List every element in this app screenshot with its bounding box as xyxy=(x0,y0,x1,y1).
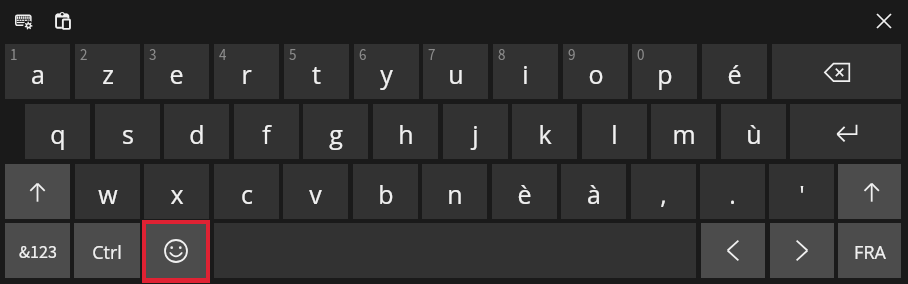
button[interactable]: Shift xyxy=(838,164,901,219)
staticText: f xyxy=(262,117,271,151)
staticText: z xyxy=(102,57,114,91)
button[interactable]: à xyxy=(561,164,626,219)
button[interactable]: Emoji xyxy=(146,224,206,278)
button[interactable]: Keyboard settings xyxy=(8,5,40,38)
staticText: i xyxy=(522,57,529,91)
button[interactable]: i xyxy=(493,44,558,99)
button[interactable]: u xyxy=(423,44,488,99)
staticText: Ctrl xyxy=(92,240,122,265)
staticText: p xyxy=(657,57,673,91)
button[interactable]: è xyxy=(492,164,557,219)
staticText: 0 xyxy=(637,45,645,66)
staticText: y xyxy=(380,57,393,91)
button[interactable]: é xyxy=(702,44,767,99)
staticText: c xyxy=(241,177,253,211)
staticText: u xyxy=(448,57,464,91)
button[interactable]: l xyxy=(582,104,647,159)
staticText: k xyxy=(538,117,552,151)
staticText: g xyxy=(329,117,343,151)
button[interactable]: ù xyxy=(721,104,786,159)
button[interactable]: p xyxy=(632,44,697,99)
staticText: m xyxy=(672,117,696,151)
button[interactable]: Backspace xyxy=(772,44,901,99)
staticText: é xyxy=(727,57,742,91)
button[interactable]: n xyxy=(422,164,487,219)
button[interactable]: , xyxy=(631,164,696,219)
button[interactable]: d xyxy=(164,104,229,159)
staticText: v xyxy=(309,177,322,211)
button[interactable]: b xyxy=(353,164,418,219)
staticText: , xyxy=(660,177,667,211)
staticText: h xyxy=(398,117,414,151)
staticText: d xyxy=(189,117,205,151)
button[interactable]: t xyxy=(284,44,349,99)
staticText: e xyxy=(169,57,184,91)
staticText: ù xyxy=(746,117,762,151)
staticText: 4 xyxy=(219,45,227,66)
staticText: n xyxy=(447,177,463,211)
button[interactable]: ' xyxy=(769,164,834,219)
button[interactable]: Next xyxy=(770,223,834,278)
button[interactable]: m xyxy=(651,104,716,159)
button[interactable]: . xyxy=(700,164,765,219)
button[interactable]: w xyxy=(75,164,140,219)
button[interactable]: k xyxy=(512,104,577,159)
staticText: 2 xyxy=(80,45,88,66)
button[interactable]: o xyxy=(563,44,628,99)
button[interactable]: Close xyxy=(868,5,900,37)
staticText: 1 xyxy=(10,45,18,66)
staticText: 8 xyxy=(498,45,506,66)
button[interactable]: z xyxy=(75,44,140,99)
button[interactable]: Shift xyxy=(5,164,70,219)
staticText: t xyxy=(312,57,321,91)
button[interactable]: &123 xyxy=(5,223,70,278)
button[interactable]: Ctrl xyxy=(74,223,140,278)
staticText: q xyxy=(50,117,66,151)
staticText: 7 xyxy=(428,45,436,66)
staticText: o xyxy=(588,57,604,91)
button[interactable]: Enter xyxy=(790,104,901,159)
button[interactable]: Clipboard xyxy=(48,5,80,38)
staticText: x xyxy=(170,177,184,211)
button[interactable]: x xyxy=(144,164,209,219)
button[interactable]: f xyxy=(234,104,299,159)
staticText: s xyxy=(122,117,134,151)
staticText: 3 xyxy=(149,45,157,66)
button[interactable]: y xyxy=(354,44,419,99)
button[interactable]: c xyxy=(214,164,279,219)
staticText: 6 xyxy=(359,45,367,66)
button[interactable]: h xyxy=(373,104,438,159)
staticText: FRA xyxy=(854,240,886,265)
staticText: à xyxy=(587,177,601,211)
button[interactable]: Previous xyxy=(701,223,765,278)
staticText: r xyxy=(241,57,252,91)
button[interactable]: q xyxy=(25,104,90,159)
button[interactable]: g xyxy=(303,104,368,159)
button[interactable]: j xyxy=(443,104,508,159)
staticText: . xyxy=(729,177,736,211)
staticText: 9 xyxy=(568,45,576,66)
staticText: 5 xyxy=(289,45,297,66)
staticText: l xyxy=(611,117,618,151)
staticText: b xyxy=(378,177,394,211)
staticText: a xyxy=(31,57,45,91)
button[interactable]: a xyxy=(5,44,70,99)
button[interactable]: v xyxy=(283,164,348,219)
button[interactable]: FRA xyxy=(838,223,901,278)
button[interactable]: r xyxy=(214,44,279,99)
button[interactable]: e xyxy=(144,44,209,99)
staticText: &123 xyxy=(19,240,57,266)
staticText: è xyxy=(517,177,532,211)
staticText: ' xyxy=(799,177,805,211)
staticText: w xyxy=(98,177,118,211)
button[interactable]: s xyxy=(95,104,160,159)
staticText: j xyxy=(472,117,479,151)
